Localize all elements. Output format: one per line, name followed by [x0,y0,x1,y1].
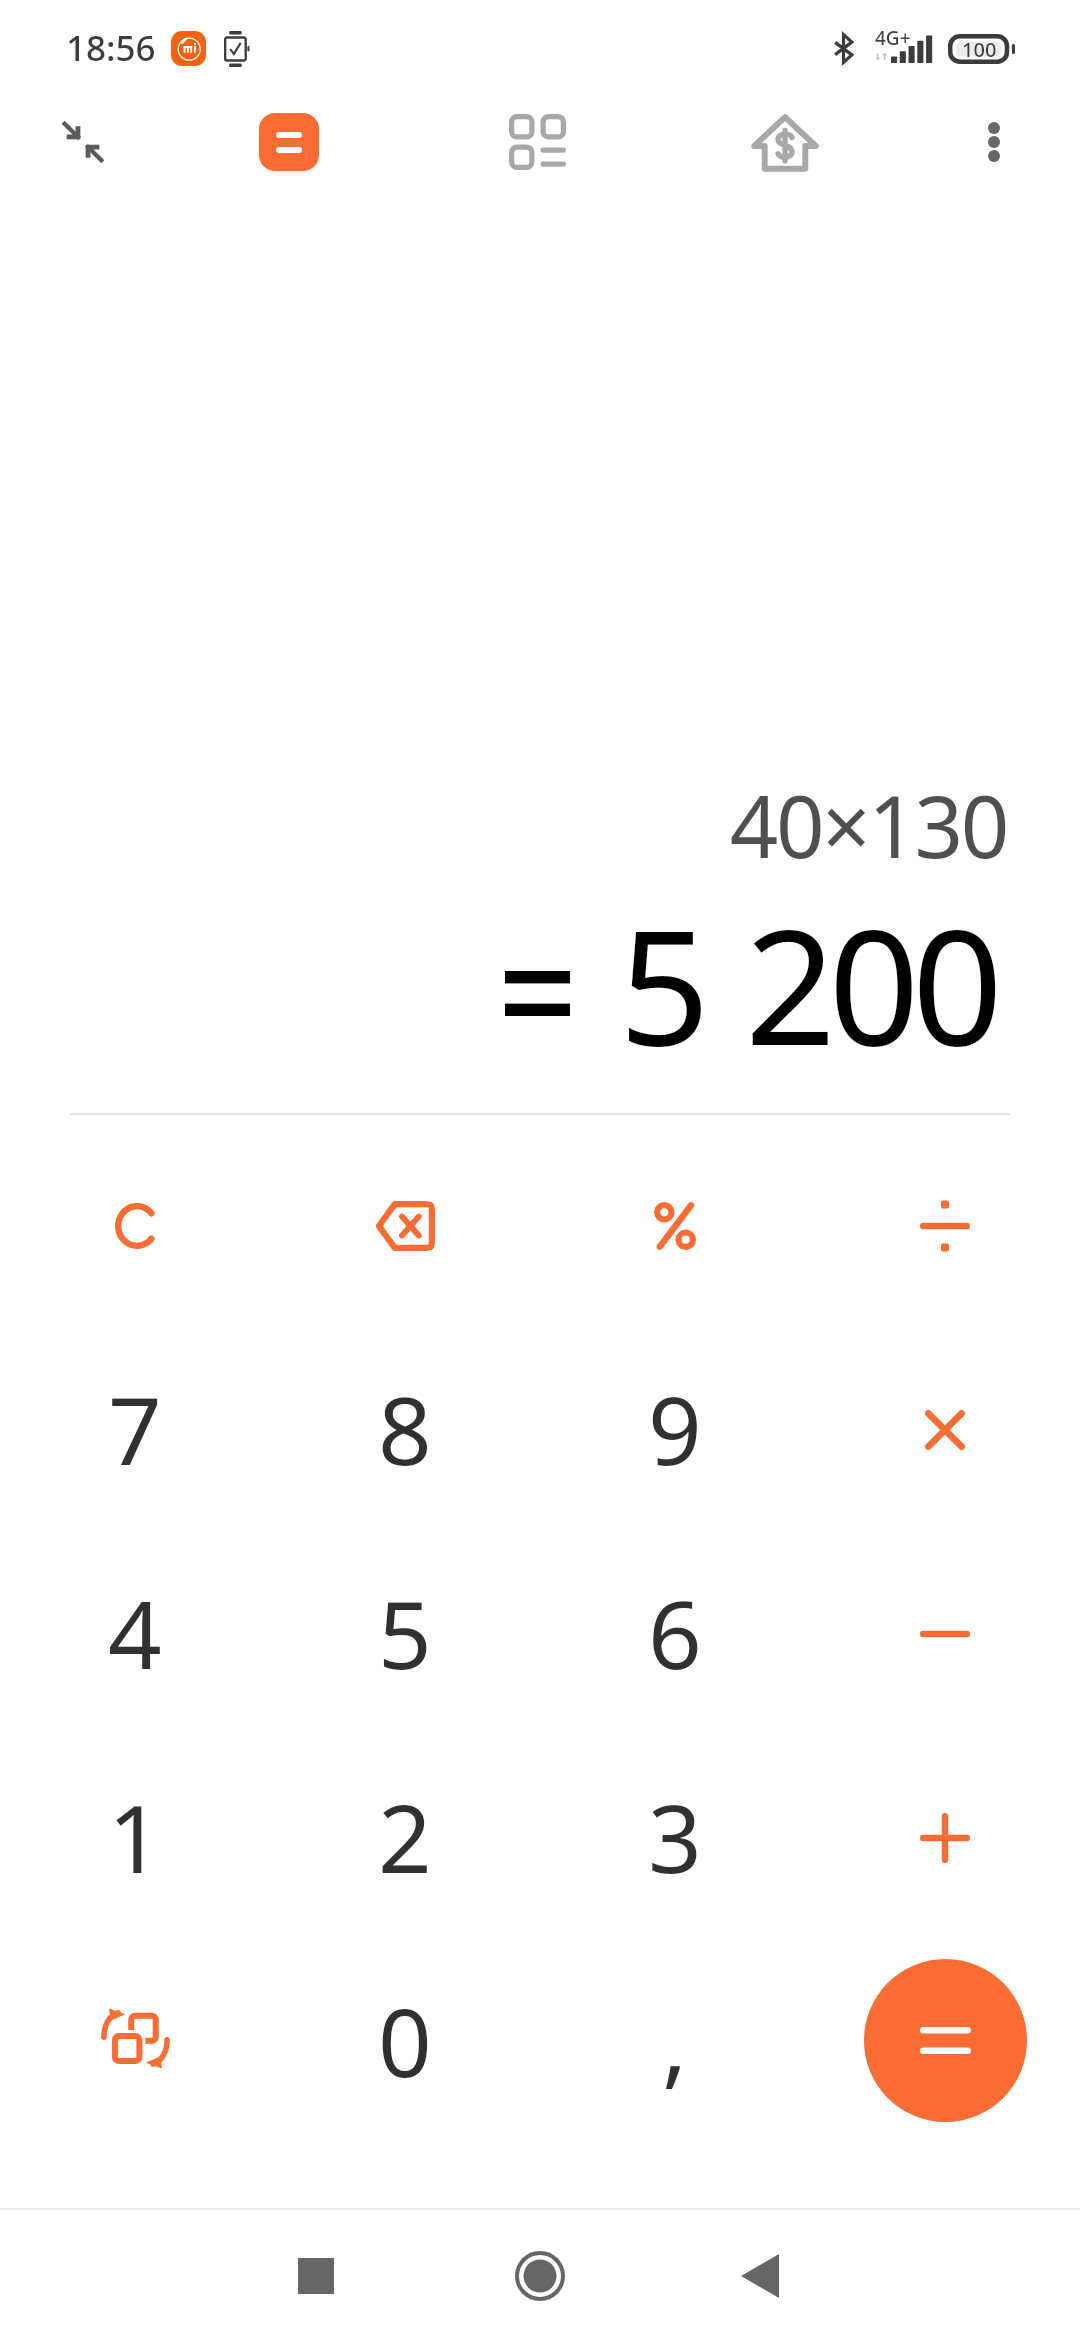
button[interactable]: 3 [540,1736,810,1940]
button[interactable]: 7 [0,1328,270,1532]
button[interactable]: 2 [270,1736,540,1940]
button[interactable]: 4 [0,1532,270,1736]
staticText: 100 [962,36,997,63]
staticText: 3 [648,1773,702,1901]
button[interactable]: 5 [270,1532,540,1736]
button[interactable]: Converters [497,102,577,182]
staticText: 5 [378,1569,432,1697]
button[interactable]: 0 [270,1940,540,2144]
button[interactable]: Equals [864,1959,1027,2122]
button[interactable]: Calculator [259,113,319,171]
staticText: 200 [745,875,996,1075]
button[interactable]: Minus [810,1532,1080,1736]
button[interactable]: Home [490,2226,590,2326]
button[interactable]: Backspace [270,1124,540,1328]
staticText: , [662,1977,688,2105]
staticText: 6 [648,1569,702,1697]
staticText: 8 [378,1365,432,1493]
staticText: 5 [619,875,710,1075]
button[interactable]: Exit full screen [43,102,123,182]
button[interactable]: Divide [810,1124,1080,1328]
staticText: 9 [648,1365,702,1493]
staticText: 2 [378,1773,432,1901]
staticText: 40×130 [729,767,1007,883]
button[interactable]: Unit converter [0,1940,270,2144]
button[interactable]: Percent [540,1124,810,1328]
button[interactable]: Back [710,2226,810,2326]
button[interactable]: More options [954,102,1034,182]
button[interactable]: Mortgage [745,103,825,183]
button[interactable]: Recents [266,2226,366,2326]
button[interactable]: Plus [810,1736,1080,1940]
button[interactable]: Decimal separator [540,1940,810,2144]
button[interactable]: Clear [0,1124,270,1328]
staticText: 4G+ [875,25,911,51]
button[interactable]: 9 [540,1328,810,1532]
button[interactable]: 6 [540,1532,810,1736]
staticText: 7 [108,1365,162,1493]
button[interactable]: 8 [270,1328,540,1532]
staticText: 4 [108,1569,162,1697]
staticText: 18:56 [66,24,156,72]
staticText: 0 [378,1977,432,2105]
button[interactable]: Multiply [810,1328,1080,1532]
button[interactable]: 1 [0,1736,270,1940]
staticText: 1 [108,1773,162,1901]
